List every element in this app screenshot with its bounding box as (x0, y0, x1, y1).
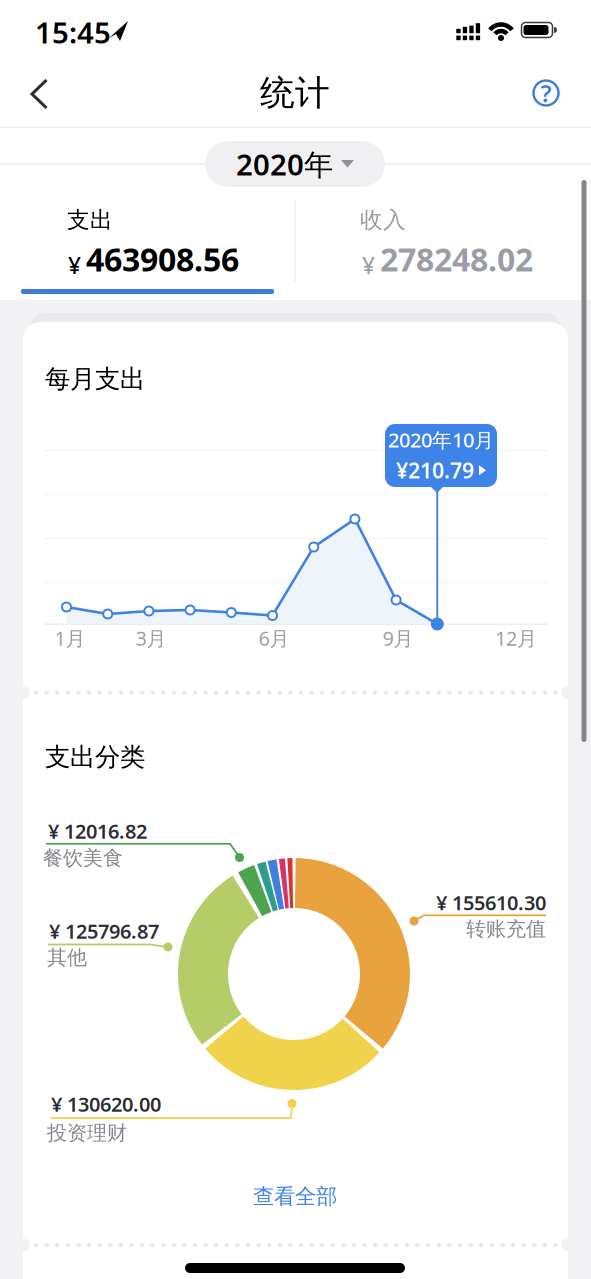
staticText: 查看全部 (253, 1183, 337, 1210)
button[interactable]: 返回 (17, 72, 61, 116)
staticText: 1月 (54, 625, 85, 651)
button[interactable]: 2020年10月 (385, 424, 497, 487)
staticText: 6月 (258, 625, 289, 651)
staticText: 3月 (135, 625, 166, 651)
staticText: ¥ 12016.82 (48, 818, 147, 844)
staticText: 9月 (382, 625, 413, 651)
staticText: 15:45 (35, 12, 111, 51)
staticText: 463908.56 (86, 238, 239, 280)
staticText: 支出 (67, 206, 113, 234)
button[interactable]: 2020年 (205, 141, 385, 187)
staticText: 2020年10月 (388, 427, 494, 453)
button[interactable]: 支出 (67, 180, 317, 280)
staticText: 收入 (360, 206, 406, 234)
staticText: 支出分类 (45, 741, 145, 772)
staticText: 其他 (47, 945, 87, 970)
staticText: 投资理财 (47, 1121, 127, 1145)
button[interactable]: 帮助 (526, 73, 566, 113)
staticText: 每月支出 (45, 363, 145, 394)
staticText: 餐饮美食 (43, 846, 123, 870)
staticText: ¥210.79 (396, 456, 474, 484)
staticText: ¥ 155610.30 (436, 889, 546, 916)
staticText: ¥ 130620.00 (51, 1091, 161, 1117)
button[interactable]: 查看全部 (215, 1174, 375, 1218)
staticText: ¥ (362, 250, 375, 280)
staticText: 12月 (495, 625, 537, 651)
button[interactable]: 收入 (360, 180, 591, 280)
staticText: 278248.02 (380, 238, 533, 280)
staticText: ¥ 125796.87 (49, 918, 159, 944)
staticText: 2020年 (236, 144, 333, 183)
staticText: ? (540, 77, 551, 109)
staticText: 统计 (260, 72, 330, 114)
staticText: 转账充值 (466, 917, 546, 941)
staticText: ¥ (68, 250, 81, 280)
